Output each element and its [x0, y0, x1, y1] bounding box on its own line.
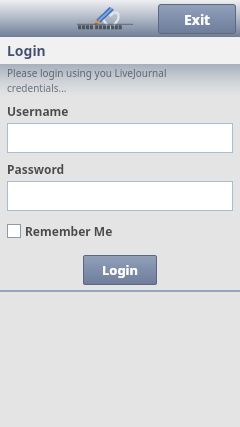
staticText: Login: [102, 261, 138, 279]
staticText: Exit: [184, 10, 211, 29]
staticText: Username: [7, 103, 69, 119]
other: LiveJournal: [77, 4, 133, 34]
button[interactable]: [7, 181, 233, 211]
staticText: Remember Me: [25, 223, 113, 239]
button[interactable]: Login: [83, 255, 157, 285]
staticText: Login: [7, 41, 46, 60]
button[interactable]: Remember Me: [7, 221, 113, 241]
staticText: Password: [7, 161, 65, 177]
staticText: Please login using you LiveJournal: [7, 66, 167, 80]
staticText: credentials...: [7, 81, 67, 95]
button[interactable]: Exit: [158, 4, 236, 34]
button[interactable]: [7, 123, 233, 153]
